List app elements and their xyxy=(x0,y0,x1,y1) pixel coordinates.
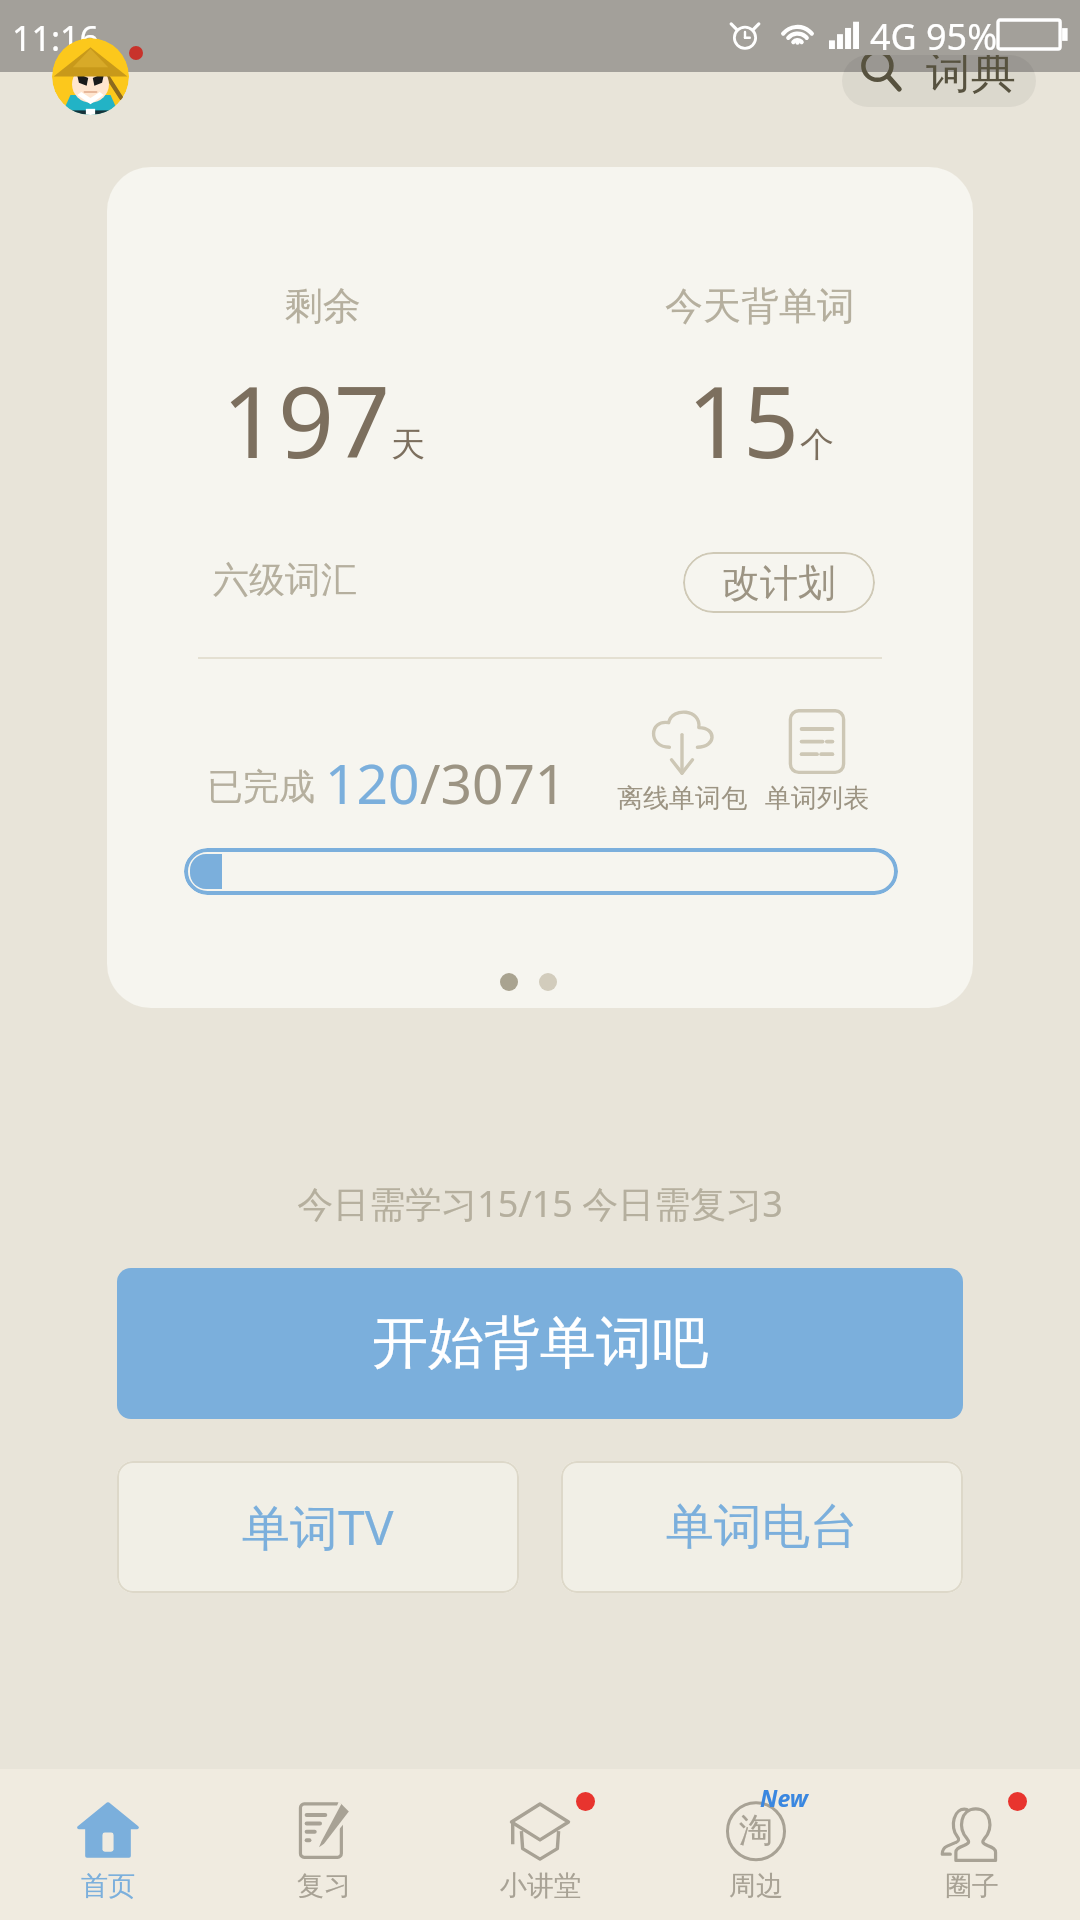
staticText: 复习 xyxy=(297,1869,351,1903)
staticText: 改计划 xyxy=(722,559,836,607)
button[interactable]: 圈子 xyxy=(864,1769,1080,1920)
staticText: 单词电台 xyxy=(666,1497,858,1557)
staticText: 15 xyxy=(687,353,800,486)
staticText: 离线单词包 xyxy=(592,782,772,815)
button[interactable]: 单词列表 xyxy=(727,708,907,815)
staticText: 词典 xyxy=(926,55,1016,96)
button[interactable]: 单词TV xyxy=(117,1461,519,1593)
button[interactable]: 小讲堂 xyxy=(432,1769,648,1920)
button[interactable]: Profile xyxy=(52,38,129,115)
staticText: 开始背单词吧 xyxy=(372,1308,708,1379)
button[interactable]: 离线单词包 xyxy=(592,708,772,815)
staticText: 95% xyxy=(926,12,998,61)
staticText: 已完成 xyxy=(207,764,315,809)
button[interactable]: 复习 xyxy=(216,1769,432,1920)
staticText: 周边 xyxy=(729,1869,783,1903)
staticText: 单词列表 xyxy=(727,782,907,815)
staticText: 首页 xyxy=(81,1869,135,1903)
staticText: New xyxy=(760,1782,808,1813)
staticText: 个 xyxy=(800,423,834,466)
staticText: 淘 xyxy=(739,1809,773,1852)
button[interactable]: 词典 xyxy=(842,55,1036,107)
button[interactable]: 淘 xyxy=(648,1769,864,1920)
staticText: 4G xyxy=(870,12,917,61)
staticText: 圈子 xyxy=(945,1869,999,1903)
button[interactable]: 开始背单词吧 xyxy=(117,1268,963,1419)
staticText: /3071 xyxy=(420,745,567,820)
button[interactable]: 单词电台 xyxy=(561,1461,963,1593)
staticText: 单词TV xyxy=(242,1494,394,1560)
staticText: 197 xyxy=(222,353,391,486)
staticText: 今天背单词 xyxy=(610,282,910,330)
staticText: 小讲堂 xyxy=(500,1869,581,1903)
staticText: 11:16 xyxy=(12,15,99,61)
staticText: 剩余 xyxy=(173,282,473,330)
button[interactable]: 改计划 xyxy=(683,552,875,613)
button[interactable]: 首页 xyxy=(0,1769,216,1920)
staticText: 六级词汇 xyxy=(213,557,357,602)
staticText: 120 xyxy=(325,745,420,820)
staticText: 天 xyxy=(391,423,425,466)
staticText: 今日需学习15/15 今日需复习3 xyxy=(0,1179,1080,1228)
